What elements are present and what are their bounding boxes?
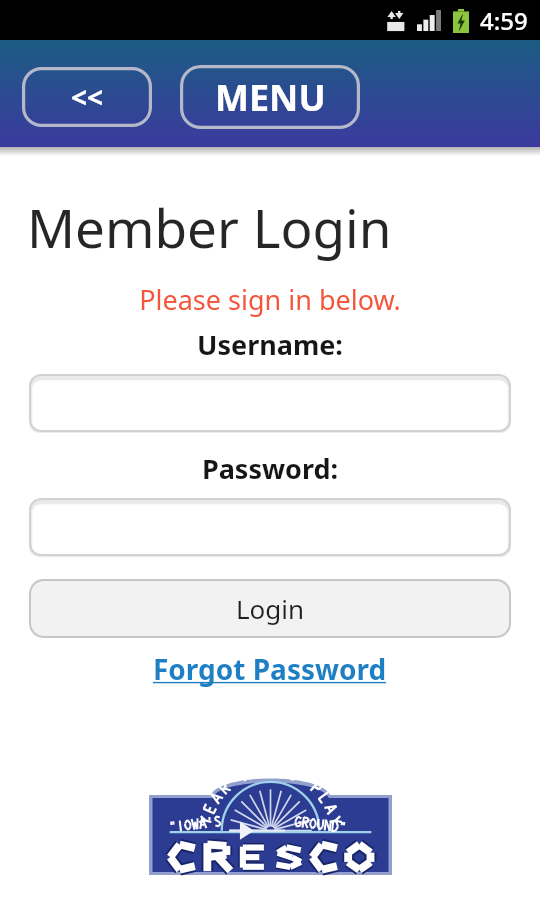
button[interactable]: Back	[22, 67, 152, 127]
staticText: 4:59	[480, 4, 528, 37]
staticText: Password:	[0, 450, 540, 487]
button[interactable]: Forgot Password	[0, 650, 540, 688]
staticText: Login	[236, 591, 305, 626]
button[interactable]	[29, 498, 511, 557]
staticText: Forgot Password	[153, 650, 387, 688]
button[interactable]	[29, 374, 511, 433]
staticText: <<	[71, 78, 104, 116]
staticText: Please sign in below.	[0, 281, 540, 318]
staticText: MENU	[215, 73, 326, 122]
button[interactable]: MENU	[180, 65, 360, 129]
button[interactable]: Login	[29, 579, 511, 638]
staticText: Username:	[0, 326, 540, 363]
staticText: Member Login	[27, 191, 392, 263]
